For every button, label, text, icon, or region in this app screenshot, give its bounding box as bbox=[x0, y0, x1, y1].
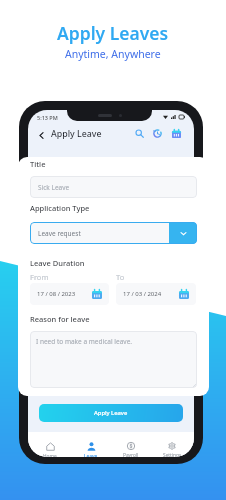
button[interactable]: 17 / 08 / 2023 bbox=[30, 283, 109, 305]
button[interactable]: Home bbox=[31, 442, 69, 457]
staticText: Sick Leave bbox=[38, 183, 70, 192]
staticText: 17 / 08 / 2023 bbox=[37, 290, 76, 298]
staticText: Leave bbox=[84, 453, 98, 457]
staticText: Payroll bbox=[123, 452, 139, 457]
button[interactable]: 17 / 03 / 2024 bbox=[116, 283, 196, 305]
staticText: 5:13 PM bbox=[37, 114, 58, 121]
button[interactable]: Apply Leave bbox=[39, 404, 183, 422]
staticText: I need to make a medical leave. bbox=[36, 337, 133, 346]
button[interactable]: Calendar bbox=[170, 127, 183, 140]
staticText: 17 / 03 / 2024 bbox=[123, 290, 162, 298]
button[interactable]: Search bbox=[133, 127, 146, 140]
button[interactable]: History bbox=[151, 127, 164, 140]
button[interactable]: Leave bbox=[72, 442, 110, 457]
staticText: Settings bbox=[163, 452, 182, 457]
staticText: Apply Leave bbox=[51, 128, 102, 140]
button[interactable]: Settings bbox=[153, 442, 191, 457]
button[interactable]: I need to make a medical leave. bbox=[30, 331, 197, 388]
staticText: Home bbox=[43, 453, 57, 457]
button[interactable]: Sick Leave bbox=[30, 176, 197, 198]
button[interactable]: Leave request bbox=[30, 222, 197, 244]
staticText: Apply Leave bbox=[94, 409, 128, 417]
staticText: Title bbox=[30, 159, 46, 169]
staticText: From bbox=[30, 272, 49, 282]
button[interactable]: Back bbox=[34, 128, 48, 142]
staticText: Anytime, Anywhere bbox=[65, 47, 161, 61]
staticText: Application Type bbox=[30, 203, 90, 213]
staticText: Leave request bbox=[38, 229, 81, 238]
staticText: Reason for leave bbox=[30, 314, 90, 324]
staticText: To bbox=[116, 272, 125, 282]
staticText: Apply Leaves bbox=[57, 21, 169, 45]
button[interactable]: Payroll bbox=[112, 442, 150, 457]
staticText: Leave Duration bbox=[30, 258, 85, 268]
